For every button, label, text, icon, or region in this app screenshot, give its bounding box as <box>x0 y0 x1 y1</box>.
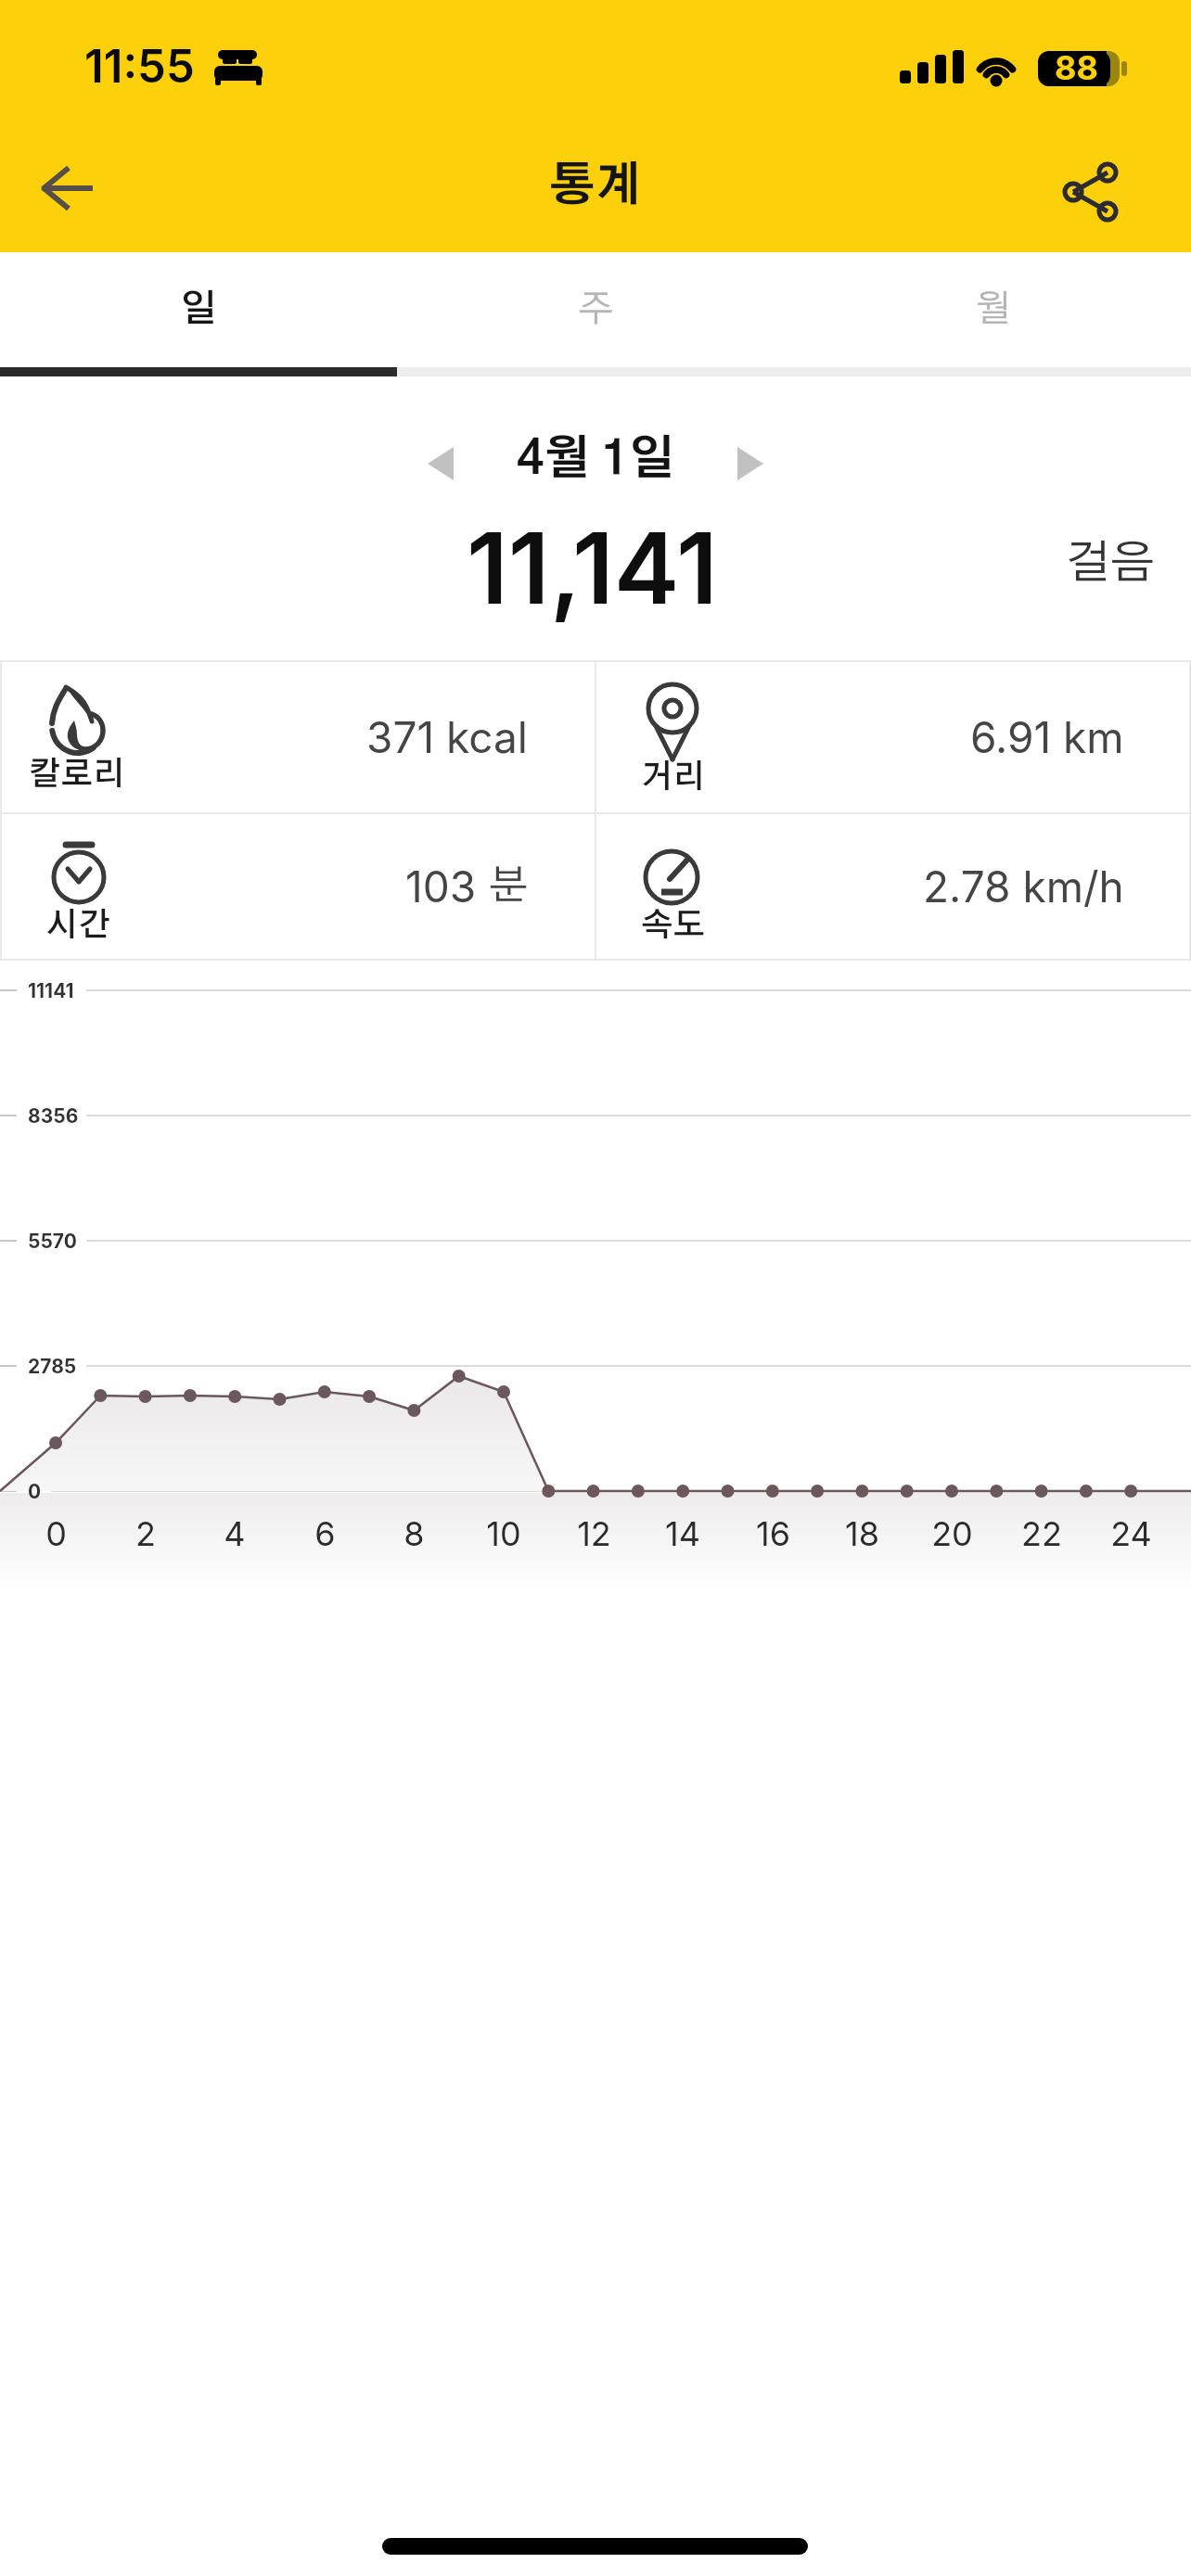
button[interactable] <box>399 427 482 501</box>
staticText: 걸음 <box>1066 541 1156 587</box>
staticText: 103 <box>405 861 489 912</box>
staticText: 14 <box>665 1513 700 1554</box>
button[interactable]: 주 <box>397 252 794 367</box>
staticText: 18 <box>845 1513 879 1554</box>
staticText: 11:55 <box>84 39 195 94</box>
staticText: 월 <box>975 291 1011 328</box>
staticText: 16 <box>756 1513 790 1554</box>
staticText: 8 <box>403 1513 425 1554</box>
staticText: 24 <box>1110 1513 1152 1554</box>
staticText: 2 <box>135 1513 156 1554</box>
staticText: 속도 <box>641 910 705 942</box>
button[interactable] <box>1048 148 1141 236</box>
staticText: 일 <box>180 291 217 328</box>
staticText: 8356 <box>28 1104 79 1128</box>
staticText: 10 <box>486 1513 521 1554</box>
staticText: 거리 <box>641 761 705 794</box>
staticText: 6.91 km <box>970 711 1124 763</box>
staticText: 12 <box>577 1513 611 1554</box>
staticText: 2785 <box>28 1355 77 1378</box>
button[interactable]: 월 <box>794 252 1191 367</box>
staticText: 11,141 <box>467 508 718 627</box>
staticText: 주 <box>578 291 614 328</box>
staticText: 4 <box>224 1513 246 1554</box>
staticText: 분 <box>489 866 529 907</box>
staticText: 0 <box>45 1513 67 1554</box>
staticText: 통계 <box>549 163 642 210</box>
staticText: 칼로리 <box>29 759 125 791</box>
staticText: 5570 <box>28 1230 77 1253</box>
staticText: 2.78 km/h <box>923 861 1124 912</box>
staticText: 0 <box>28 1480 42 1503</box>
staticText: 371 kcal <box>366 711 529 763</box>
button[interactable] <box>710 427 793 501</box>
button[interactable]: 일 <box>0 252 397 367</box>
staticText: 22 <box>1021 1513 1062 1554</box>
button[interactable] <box>19 144 121 232</box>
staticText: 11141 <box>28 979 74 1002</box>
staticText: 88 <box>1055 47 1098 88</box>
staticText: 6 <box>314 1513 336 1554</box>
staticText: 20 <box>931 1513 973 1554</box>
staticText: 4월 1일 <box>517 437 675 483</box>
staticText: 시간 <box>46 910 110 942</box>
